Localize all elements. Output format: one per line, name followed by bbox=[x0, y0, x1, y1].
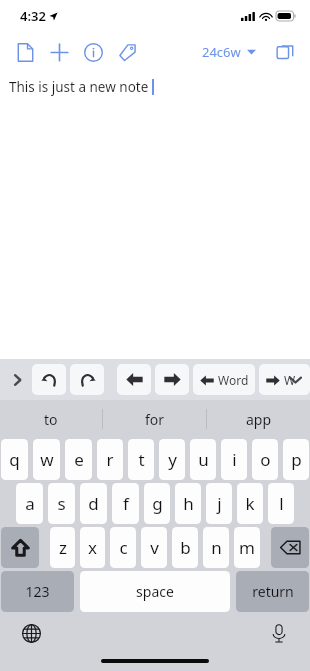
staticText: e bbox=[74, 448, 84, 471]
button[interactable]: 123 bbox=[1, 571, 74, 612]
staticText: b bbox=[180, 536, 191, 559]
staticText: v bbox=[150, 536, 159, 559]
button[interactable]: Windows bbox=[270, 37, 300, 67]
staticText: l bbox=[279, 492, 284, 515]
staticText: x bbox=[88, 536, 97, 559]
button[interactable]: Move left bbox=[117, 364, 151, 395]
staticText: Word bbox=[218, 372, 249, 388]
staticText: for bbox=[145, 410, 165, 429]
staticText: o bbox=[260, 448, 271, 471]
button[interactable]: j bbox=[206, 483, 232, 524]
button[interactable]: Info bbox=[78, 37, 108, 67]
staticText: d bbox=[88, 492, 99, 515]
staticText: c bbox=[119, 536, 128, 559]
staticText: 123 bbox=[25, 582, 50, 601]
button[interactable]: h bbox=[175, 483, 201, 524]
button[interactable]: z bbox=[50, 527, 75, 568]
staticText: 4:32 bbox=[20, 7, 46, 25]
staticText: f bbox=[123, 492, 129, 515]
staticText: y bbox=[168, 448, 177, 471]
staticText: z bbox=[59, 536, 67, 559]
button[interactable]: W bbox=[259, 364, 310, 395]
staticText: return bbox=[252, 582, 294, 601]
button[interactable]: m bbox=[234, 527, 260, 568]
button[interactable]: p bbox=[283, 439, 309, 480]
button[interactable]: Change keyboard language bbox=[16, 618, 46, 648]
staticText: space bbox=[136, 582, 174, 601]
button[interactable]: v bbox=[141, 527, 167, 568]
button[interactable]: Tag bbox=[112, 37, 142, 67]
button[interactable]: for bbox=[103, 400, 206, 438]
button[interactable]: 24c6w bbox=[198, 39, 260, 65]
staticText: q bbox=[9, 448, 20, 471]
button[interactable]: d bbox=[80, 483, 107, 524]
button[interactable]: Redo bbox=[70, 364, 104, 395]
staticText: w bbox=[40, 448, 54, 471]
button[interactable]: c bbox=[110, 527, 136, 568]
button[interactable]: Move right bbox=[155, 364, 189, 395]
button[interactable]: l bbox=[268, 483, 294, 524]
button[interactable]: space bbox=[80, 571, 230, 612]
button[interactable]: app bbox=[207, 400, 310, 438]
button[interactable]: Word bbox=[193, 364, 255, 395]
button[interactable]: k bbox=[237, 483, 263, 524]
staticText: n bbox=[211, 536, 222, 559]
button[interactable]: x bbox=[80, 527, 105, 568]
staticText: a bbox=[25, 492, 35, 515]
button[interactable]: i bbox=[221, 439, 247, 480]
button[interactable]: Shift bbox=[1, 527, 39, 568]
button[interactable]: n bbox=[203, 527, 229, 568]
button[interactable]: return bbox=[236, 571, 309, 612]
button[interactable]: t bbox=[128, 439, 154, 480]
button[interactable]: Backspace bbox=[271, 527, 309, 568]
staticText: p bbox=[291, 448, 302, 471]
staticText: k bbox=[245, 492, 255, 515]
staticText: r bbox=[106, 448, 114, 471]
button[interactable]: f bbox=[112, 483, 139, 524]
button[interactable]: b bbox=[172, 527, 198, 568]
button[interactable]: e bbox=[65, 439, 92, 480]
staticText: g bbox=[152, 492, 163, 515]
staticText: m bbox=[239, 536, 255, 559]
button[interactable]: Hide keyboard bbox=[284, 369, 306, 391]
staticText: This is just a new note bbox=[9, 78, 149, 96]
button[interactable]: New document bbox=[10, 37, 40, 67]
staticText: j bbox=[217, 492, 222, 515]
staticText: app bbox=[246, 410, 272, 429]
button[interactable]: u bbox=[190, 439, 216, 480]
button[interactable]: o bbox=[252, 439, 278, 480]
staticText: h bbox=[183, 492, 194, 515]
button[interactable]: This is just a new note bbox=[0, 72, 310, 359]
button[interactable]: to bbox=[0, 400, 102, 438]
button[interactable]: g bbox=[144, 483, 170, 524]
button[interactable]: s bbox=[48, 483, 75, 524]
staticText: W bbox=[284, 372, 296, 388]
button[interactable]: r bbox=[97, 439, 123, 480]
button[interactable]: Add bbox=[44, 37, 74, 67]
button[interactable]: q bbox=[1, 439, 28, 480]
button[interactable]: Dictation bbox=[264, 618, 294, 648]
button[interactable]: Undo bbox=[32, 364, 66, 395]
staticText: 24c6w bbox=[202, 43, 241, 61]
staticText: t bbox=[138, 448, 145, 471]
staticText: s bbox=[57, 492, 66, 515]
staticText: i bbox=[232, 448, 237, 471]
staticText: to bbox=[44, 410, 58, 429]
button[interactable]: a bbox=[16, 483, 43, 524]
button[interactable]: w bbox=[33, 439, 60, 480]
staticText: u bbox=[198, 448, 209, 471]
button[interactable]: Expand bbox=[7, 370, 27, 390]
button[interactable]: y bbox=[159, 439, 185, 480]
